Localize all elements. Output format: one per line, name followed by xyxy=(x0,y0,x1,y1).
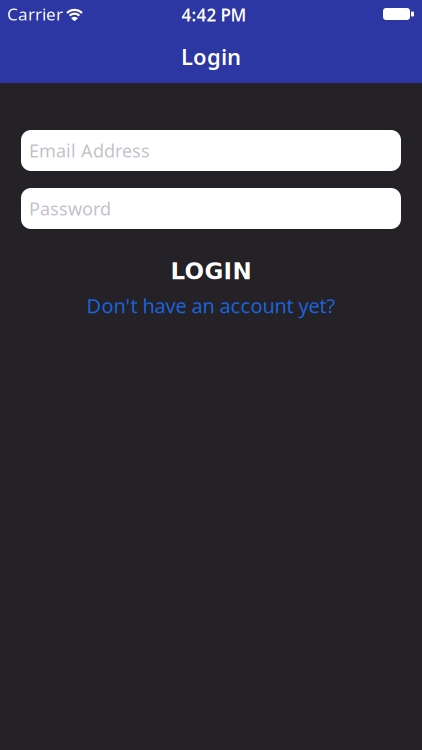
staticText: LOGIN xyxy=(170,258,251,285)
staticText: Login xyxy=(181,41,241,71)
button[interactable]: Email Address xyxy=(21,130,401,171)
button[interactable]: Password xyxy=(21,188,401,229)
staticText: Don't have an account yet? xyxy=(86,292,335,319)
button[interactable]: LOGIN xyxy=(170,258,251,285)
staticText: Password xyxy=(29,196,111,221)
staticText: Email Address xyxy=(29,138,150,163)
staticText: 4:42 PM xyxy=(181,3,246,27)
staticText: Carrier xyxy=(7,2,63,26)
button[interactable]: Don't have an account yet? xyxy=(86,292,335,319)
